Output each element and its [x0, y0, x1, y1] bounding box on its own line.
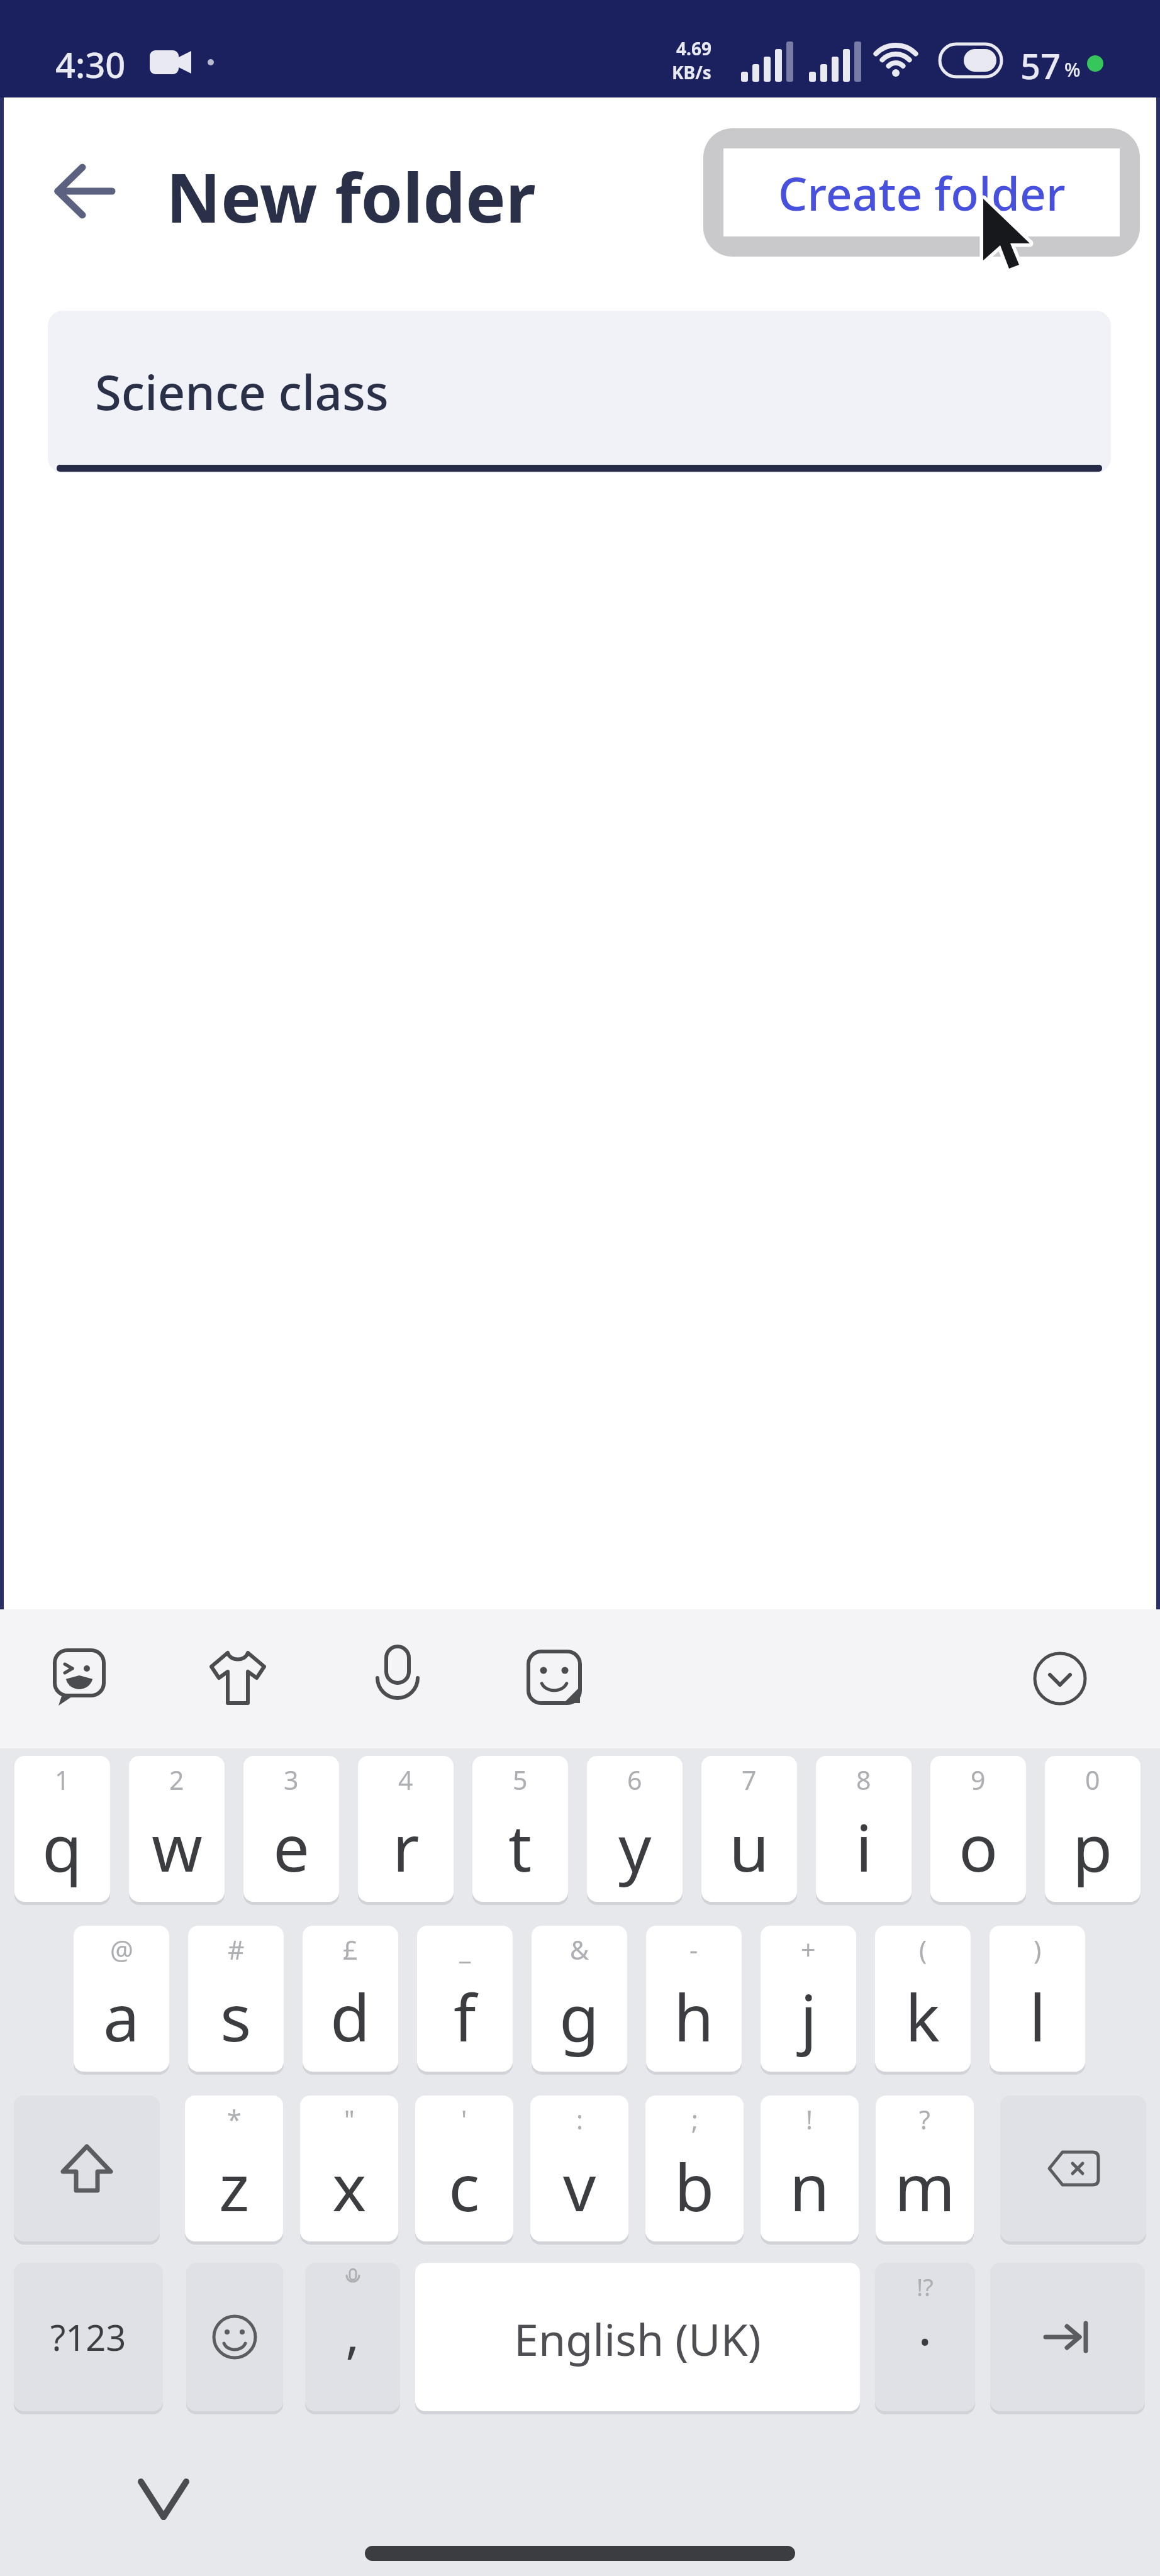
button[interactable]: [54, 162, 117, 220]
button[interactable]: &: [532, 1926, 627, 2072]
staticText: c: [449, 2142, 480, 2230]
button[interactable]: ): [990, 1926, 1085, 2072]
staticText: 2: [169, 1762, 184, 1797]
staticText: &: [570, 1932, 589, 1967]
staticText: *: [227, 2102, 242, 2137]
staticText: -: [689, 1932, 698, 1967]
button[interactable]: Science class: [48, 311, 1111, 473]
button[interactable]: 1: [14, 1756, 110, 1902]
button[interactable]: !: [761, 2096, 859, 2241]
staticText: Create folder: [778, 162, 1066, 224]
button[interactable]: Create folder: [703, 128, 1140, 257]
staticText: f: [454, 1972, 476, 2060]
staticText: +: [801, 1932, 816, 1967]
staticText: £: [343, 1932, 358, 1967]
button[interactable]: 6: [587, 1756, 683, 1902]
staticText: !?: [917, 2270, 934, 2303]
staticText: a: [103, 1972, 140, 2060]
staticText: q: [42, 1802, 82, 1890]
staticText: .: [918, 2289, 932, 2360]
button[interactable]: _: [417, 1926, 513, 2072]
staticText: u: [729, 1802, 769, 1890]
button[interactable]: [1033, 1652, 1087, 1706]
button[interactable]: 9: [930, 1756, 1026, 1902]
button[interactable]: ?123: [14, 2263, 163, 2411]
staticText: 3: [284, 1762, 299, 1797]
button[interactable]: [1000, 2096, 1146, 2241]
staticText: i: [856, 1802, 873, 1890]
staticText: 5: [513, 1762, 528, 1797]
staticText: g: [559, 1972, 600, 2060]
staticText: h: [674, 1972, 714, 2060]
staticText: #: [228, 1932, 245, 1967]
staticText: w: [152, 1802, 203, 1890]
staticText: KB/s: [672, 60, 711, 84]
staticText: %: [1064, 57, 1081, 82]
staticText: (: [919, 1932, 927, 1967]
button[interactable]: +: [761, 1926, 856, 2072]
button[interactable]: 2: [129, 1756, 225, 1902]
staticText: p: [1073, 1802, 1113, 1890]
staticText: n: [789, 2142, 830, 2230]
button[interactable]: @: [74, 1926, 169, 2072]
staticText: 57: [1020, 42, 1061, 89]
button[interactable]: #: [188, 1926, 284, 2072]
button[interactable]: 3: [243, 1756, 339, 1902]
button[interactable]: *: [185, 2096, 283, 2241]
button[interactable]: [208, 1650, 268, 1706]
button[interactable]: -: [646, 1926, 742, 2072]
staticText: k: [905, 1972, 940, 2060]
staticText: ': [461, 2102, 467, 2137]
staticText: 4.69: [676, 36, 711, 60]
staticText: s: [220, 1972, 252, 2060]
button[interactable]: [990, 2263, 1145, 2411]
button[interactable]: English (UK): [415, 2263, 860, 2411]
button[interactable]: £: [303, 1926, 398, 2072]
staticText: m: [895, 2142, 956, 2230]
staticText: 6: [627, 1762, 642, 1797]
staticText: y: [618, 1802, 652, 1890]
staticText: v: [563, 2142, 596, 2230]
button[interactable]: 7: [701, 1756, 797, 1902]
button[interactable]: ;: [645, 2096, 744, 2241]
button[interactable]: ?: [876, 2096, 974, 2241]
button[interactable]: [130, 2475, 198, 2526]
staticText: j: [800, 1972, 817, 2060]
button[interactable]: [527, 1650, 583, 1706]
button[interactable]: (: [875, 1926, 971, 2072]
staticText: Science class: [95, 359, 389, 425]
staticText: l: [1029, 1972, 1046, 2060]
staticText: ,: [345, 2296, 360, 2368]
staticText: _: [459, 1932, 471, 1967]
button[interactable]: [186, 2263, 283, 2411]
button[interactable]: ,: [305, 2263, 400, 2411]
button[interactable]: [377, 1646, 418, 1707]
staticText: e: [273, 1802, 310, 1890]
staticText: t: [508, 1802, 532, 1890]
staticText: ): [1034, 1932, 1042, 1967]
staticText: New folder: [166, 151, 536, 243]
button[interactable]: :: [530, 2096, 628, 2241]
button[interactable]: !?: [875, 2263, 975, 2411]
button[interactable]: 8: [816, 1756, 912, 1902]
staticText: d: [330, 1972, 371, 2060]
button[interactable]: 5: [472, 1756, 568, 1902]
staticText: ?123: [50, 2313, 126, 2361]
staticText: 8: [856, 1762, 871, 1797]
staticText: 7: [742, 1762, 757, 1797]
staticText: r: [393, 1802, 420, 1890]
button[interactable]: [14, 2096, 160, 2241]
staticText: ;: [691, 2102, 698, 2137]
button[interactable]: [53, 1649, 106, 1708]
button[interactable]: ': [415, 2096, 513, 2241]
button[interactable]: 0: [1045, 1756, 1140, 1902]
staticText: x: [332, 2142, 367, 2230]
staticText: ?: [919, 2102, 930, 2137]
staticText: English (UK): [514, 2309, 761, 2368]
staticText: o: [959, 1802, 998, 1890]
staticText: 9: [971, 1762, 986, 1797]
button[interactable]: 4: [358, 1756, 454, 1902]
staticText: @: [110, 1932, 133, 1967]
staticText: :: [576, 2102, 583, 2137]
button[interactable]: ": [300, 2096, 398, 2241]
